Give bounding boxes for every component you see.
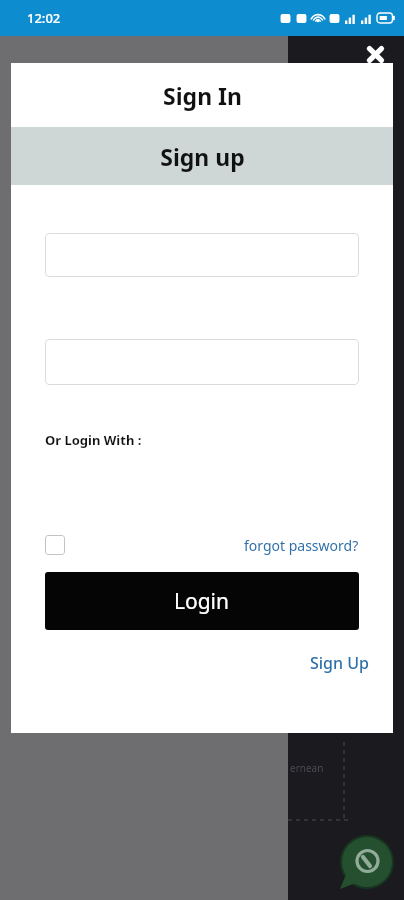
button[interactable]: Email: [45, 233, 359, 277]
button[interactable]: Login: [45, 572, 359, 630]
staticText: forgot password?: [244, 536, 359, 555]
button[interactable]: Sign up: [11, 127, 393, 185]
button[interactable]: Password: [45, 339, 359, 385]
button[interactable]: Sign In: [11, 63, 393, 127]
button[interactable]: Sign Up: [310, 652, 369, 674]
button[interactable]: forgot password?: [244, 536, 359, 555]
button[interactable]: Remember me: [45, 535, 65, 555]
staticText: Sign up: [160, 141, 245, 172]
staticText: Sign In: [163, 80, 242, 111]
staticText: Or Login With :: [45, 431, 142, 449]
staticText: Login: [174, 587, 230, 616]
button[interactable]: Close: [364, 43, 387, 66]
staticText: ernean: [290, 761, 324, 775]
staticText: Sign Up: [310, 652, 369, 674]
staticText: 12:02: [27, 9, 61, 27]
